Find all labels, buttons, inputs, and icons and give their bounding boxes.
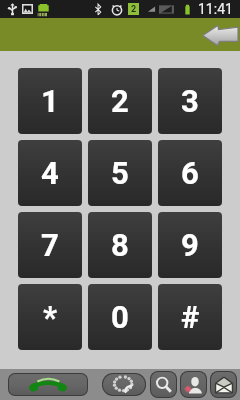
staticText: 8 [111,227,129,263]
button[interactable]: Call [9,374,87,395]
button[interactable]: 2 [88,68,152,134]
staticText: 11:41 [198,1,233,17]
button[interactable]: Recent calls [103,374,145,395]
button[interactable]: 0 [88,284,152,350]
staticText: * [43,299,58,335]
staticText: # [181,299,200,335]
staticText: 4 [41,155,59,191]
button[interactable]: Messages [211,372,236,397]
button[interactable]: 9 [158,212,222,278]
button[interactable]: 6 [158,140,222,206]
staticText: 9 [181,227,199,263]
staticText: 7 [41,227,59,263]
staticText: 5 [111,155,129,191]
staticText: 2 [111,83,129,119]
button[interactable]: 8 [88,212,152,278]
staticText: 1 [41,83,59,119]
button[interactable]: Back [202,25,238,46]
staticText: 0 [111,299,129,335]
staticText: 6 [181,155,199,191]
staticText: 3 [181,83,199,119]
button[interactable]: * [18,284,82,350]
button[interactable]: # [158,284,222,350]
button[interactable]: 3 [158,68,222,134]
staticText: 2 [131,4,137,15]
button[interactable]: Add contact [181,372,206,397]
button[interactable]: Search [151,372,176,397]
button[interactable]: 1 [18,68,82,134]
button[interactable]: 4 [18,140,82,206]
button[interactable]: 5 [88,140,152,206]
button[interactable]: 7 [18,212,82,278]
